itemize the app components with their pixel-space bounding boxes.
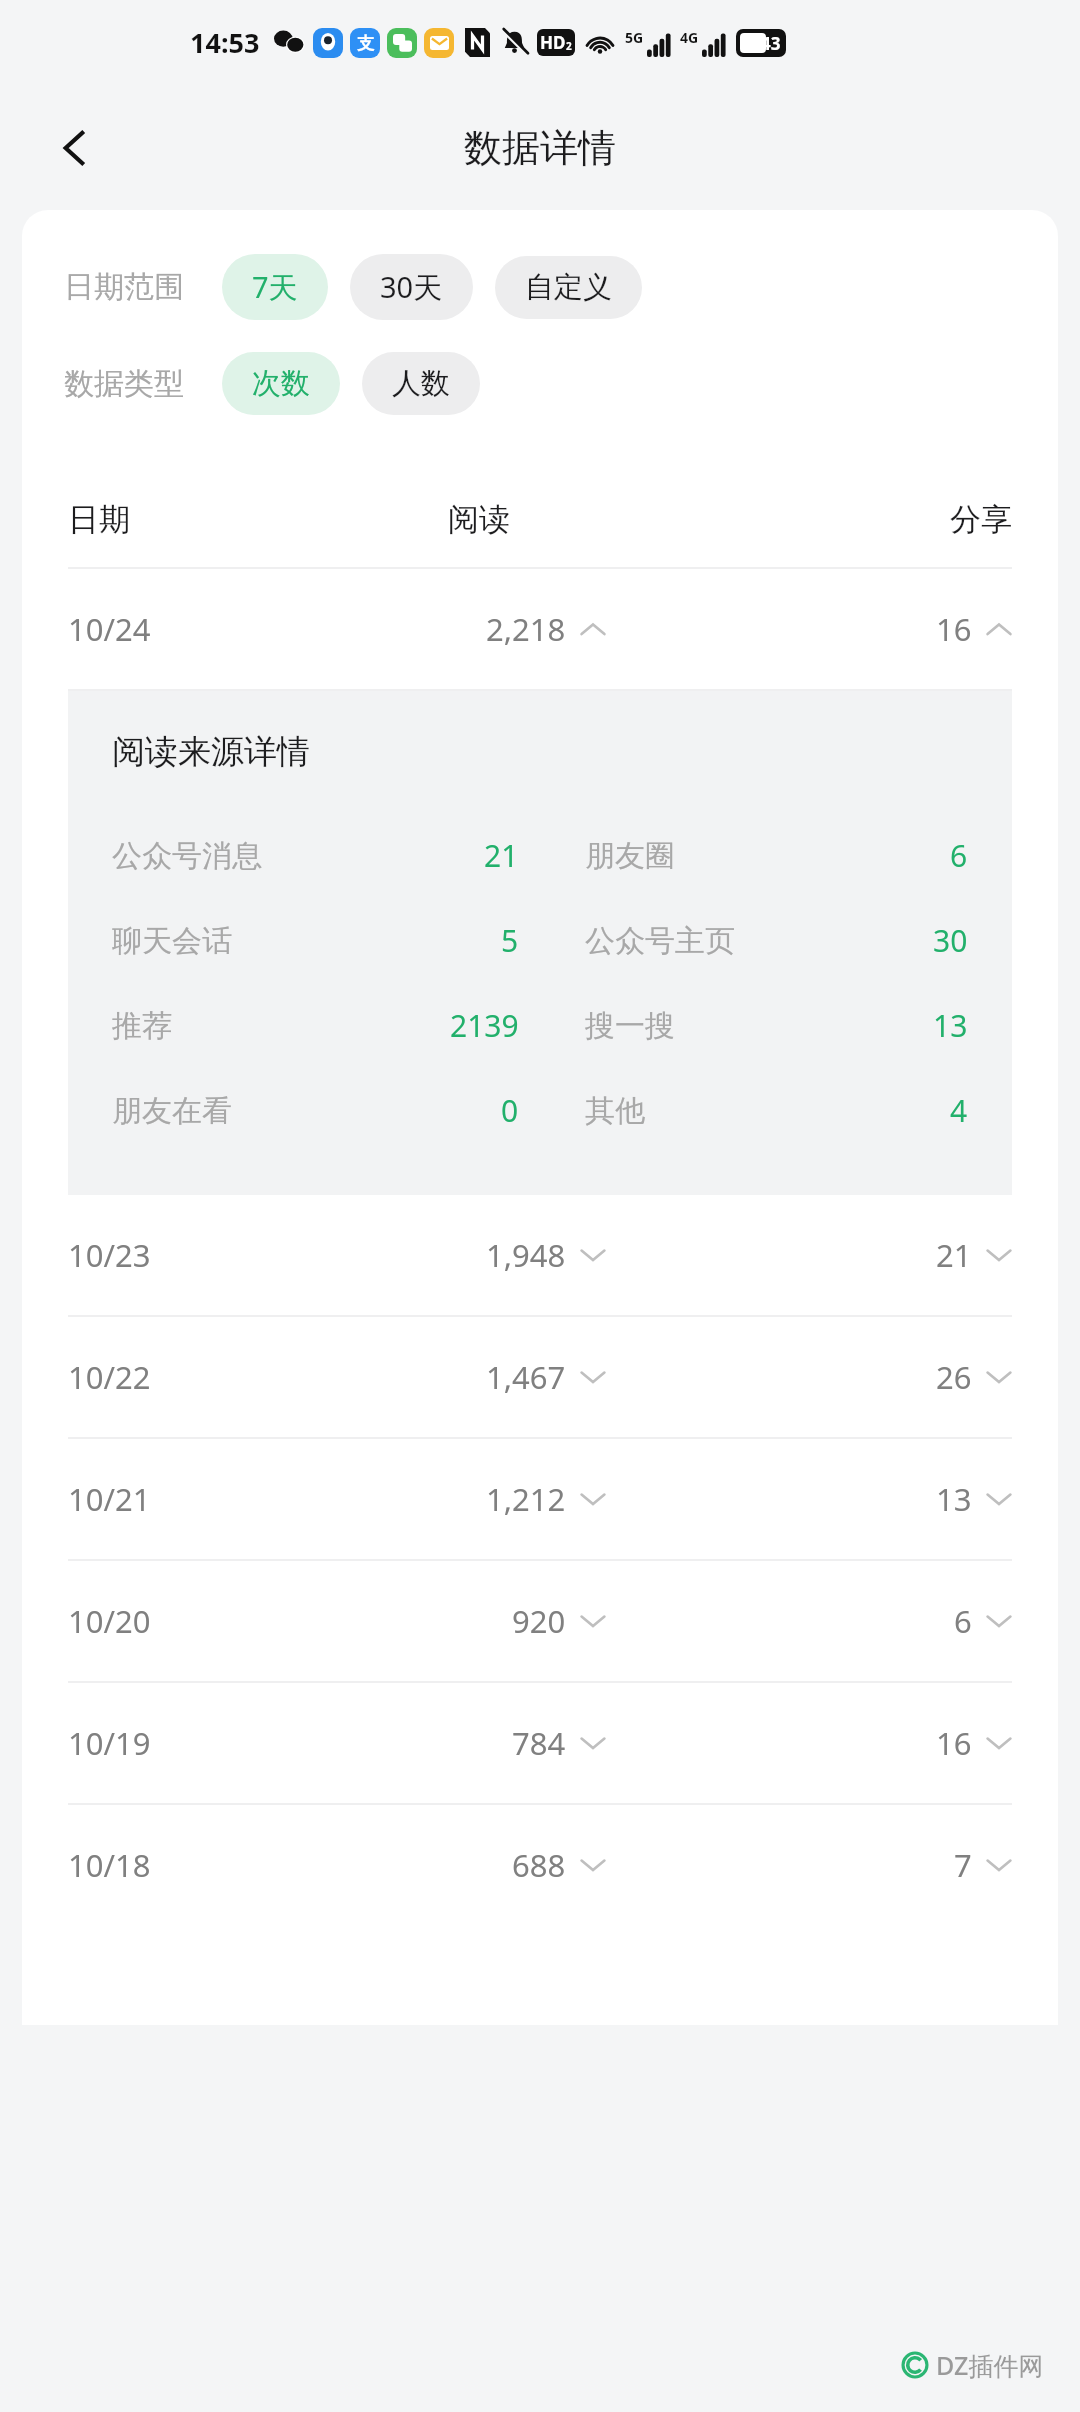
staticText: 搜一搜 <box>585 1007 896 1045</box>
staticText: 10/21 <box>68 1478 448 1520</box>
staticText: 5G <box>625 28 644 47</box>
staticText: 6 <box>950 835 968 876</box>
staticText: 1,948 <box>486 1234 566 1276</box>
staticText: 10/20 <box>68 1600 448 1642</box>
staticText: 30天 <box>380 267 443 307</box>
button[interactable]: Back <box>42 115 108 181</box>
button[interactable]: 7天 <box>222 254 328 320</box>
staticText: 数据类型 <box>64 365 184 403</box>
staticText: 次数 <box>252 365 310 402</box>
staticText: 阅读 <box>448 500 750 539</box>
staticText: 13 <box>933 1005 968 1046</box>
button[interactable]: 30天 <box>350 254 473 320</box>
staticText: 10/22 <box>68 1356 448 1398</box>
staticText: 1,467 <box>486 1356 566 1398</box>
button[interactable]: 10/23 <box>22 1195 1058 1315</box>
button[interactable]: 人数 <box>362 352 480 415</box>
staticText: 5 <box>501 920 519 961</box>
staticText: 920 <box>512 1600 566 1642</box>
staticText: 2,218 <box>486 608 566 650</box>
staticText: 21 <box>484 835 519 876</box>
staticText: 30 <box>933 920 968 961</box>
staticText: 688 <box>512 1844 566 1886</box>
staticText: 16 <box>936 608 972 650</box>
staticText: 16 <box>936 1722 972 1764</box>
staticText: 26 <box>936 1356 972 1398</box>
staticText: 2 <box>566 39 572 53</box>
staticText: 10/23 <box>68 1234 448 1276</box>
staticText: 日期 <box>68 500 448 539</box>
button[interactable]: 10/18 <box>22 1805 1058 1925</box>
staticText: 10/18 <box>68 1844 448 1886</box>
staticText: 0 <box>501 1090 519 1131</box>
staticText: 21 <box>936 1234 972 1276</box>
button[interactable]: 10/22 <box>22 1317 1058 1437</box>
staticText: 7天 <box>252 267 298 307</box>
staticText: 其他 <box>585 1092 896 1130</box>
staticText: 13 <box>936 1478 972 1520</box>
staticText: 朋友在看 <box>112 1092 423 1130</box>
button[interactable]: 10/19 <box>22 1683 1058 1803</box>
staticText: 分享 <box>950 500 1012 539</box>
staticText: 朋友圈 <box>585 837 896 875</box>
staticText: 阅读来源详情 <box>112 731 310 773</box>
staticText: DZ插件网 <box>936 2348 1044 2382</box>
button[interactable]: 10/20 <box>22 1561 1058 1681</box>
staticText: HD <box>540 31 566 54</box>
staticText: 公众号主页 <box>585 922 896 960</box>
staticText: 自定义 <box>525 269 612 306</box>
staticText: 4 <box>950 1090 968 1131</box>
staticText: 1,212 <box>486 1478 566 1520</box>
staticText: 43 <box>761 32 781 55</box>
staticText: 6 <box>954 1600 972 1642</box>
staticText: 4G <box>680 28 699 47</box>
staticText: 支 <box>357 33 374 54</box>
staticText: 人数 <box>392 365 450 402</box>
staticText: 公众号消息 <box>112 837 423 875</box>
staticText: 14:53 <box>190 24 260 61</box>
button[interactable]: 10/21 <box>22 1439 1058 1559</box>
staticText: 10/19 <box>68 1722 448 1764</box>
staticText: 10/24 <box>68 608 448 650</box>
staticText: 聊天会话 <box>112 922 423 960</box>
staticText: 日期范围 <box>64 268 184 306</box>
button[interactable]: 次数 <box>222 352 340 415</box>
staticText: 784 <box>512 1722 566 1764</box>
button[interactable]: 自定义 <box>495 256 642 319</box>
staticText: 2139 <box>450 1005 519 1046</box>
staticText: 推荐 <box>112 1007 423 1045</box>
staticText: 7 <box>954 1844 972 1886</box>
button[interactable]: 10/24 <box>22 569 1058 689</box>
staticText: 数据详情 <box>464 124 616 172</box>
